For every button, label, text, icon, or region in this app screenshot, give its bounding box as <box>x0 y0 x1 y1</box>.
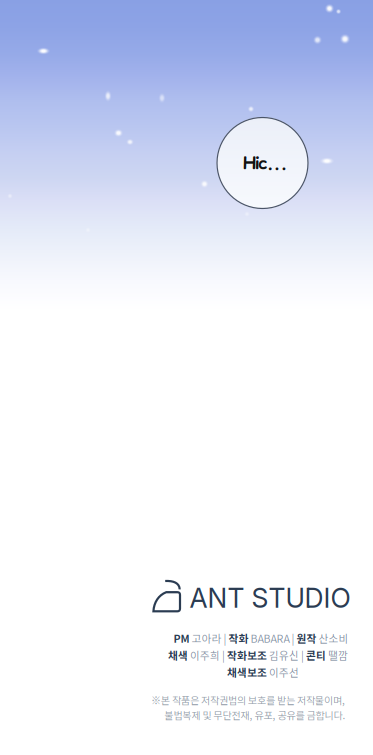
staticText: | <box>221 630 228 646</box>
staticText: 콘티 <box>306 647 326 663</box>
staticText: 불법복제 및 무단전재, 유포, 공유를 금합니다. <box>164 708 345 722</box>
staticText: Hic... <box>243 151 288 175</box>
staticText: 작화 <box>228 630 248 646</box>
staticText: 이주선 <box>267 664 299 680</box>
staticText: 채색 <box>168 647 188 663</box>
staticText: | <box>299 647 306 663</box>
staticText: BABARA <box>248 630 289 646</box>
staticText: PM <box>173 630 189 646</box>
staticText: 이주희 <box>188 647 220 663</box>
staticText: 산소비 <box>316 630 348 646</box>
staticText: 땔깜 <box>326 647 348 663</box>
staticText: | <box>289 630 296 646</box>
staticText: ANT STUDIO <box>189 582 350 614</box>
staticText: 채색보조 <box>227 664 267 680</box>
staticText: | <box>220 647 227 663</box>
staticText: 작화보조 <box>227 647 267 663</box>
staticText: ※본 작품은 저작권법의 보호를 받는 저작물이며, <box>151 693 345 707</box>
staticText: 고아라 <box>189 630 221 646</box>
staticText: 김유신 <box>267 647 299 663</box>
staticText: 원작 <box>296 630 316 646</box>
